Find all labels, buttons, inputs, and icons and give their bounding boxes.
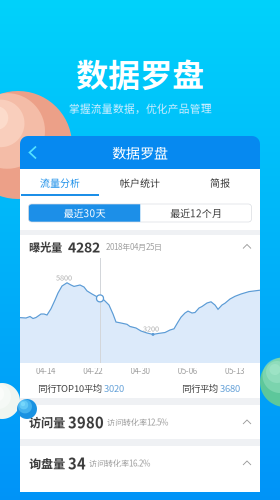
staticText: 最近30天 (63, 206, 105, 220)
button[interactable]: 询盘量 (20, 446, 260, 480)
staticText: 数据罗盘 (112, 142, 168, 163)
staticText: 访问转化率16.2% (89, 457, 150, 469)
staticText: 简报 (210, 175, 230, 190)
staticText: 5800 (56, 272, 72, 283)
button[interactable]: 访问量 (20, 405, 260, 439)
staticText: 同行TOP10平均 (38, 381, 104, 395)
staticText: 访问转化率12.5% (107, 416, 168, 428)
button[interactable]: 最近30天 (28, 204, 140, 222)
staticText: 询盘量 (29, 454, 65, 472)
button[interactable]: Back (20, 136, 46, 169)
staticText: 帐户统计 (120, 175, 160, 190)
staticText: 最近12个月 (170, 206, 222, 220)
staticText: 4282 (62, 236, 106, 257)
staticText: 3020 (104, 381, 124, 395)
staticText: 数据罗盘 (76, 50, 204, 96)
staticText: 掌握流量数据，优化产品管理 (68, 100, 211, 116)
staticText: 05-06 (178, 365, 197, 376)
staticText: 04-30 (130, 365, 149, 376)
button[interactable]: 最近12个月 (140, 204, 251, 222)
staticText: 3680 (220, 381, 240, 395)
staticText: 3200 (143, 323, 159, 334)
staticText: 同行平均 (182, 381, 220, 395)
staticText: 05-13 (225, 365, 244, 376)
staticText: 2018年04月25日 (106, 241, 162, 252)
staticText: 3980 (65, 411, 107, 433)
staticText: 04-22 (83, 365, 102, 376)
staticText: 流量分析 (40, 175, 80, 190)
staticText: 访问量 (29, 413, 65, 431)
staticText: 04-14 (36, 365, 55, 376)
button[interactable]: 帐户统计 (100, 169, 180, 196)
staticText: 曝光量 (29, 238, 62, 255)
staticText: 34 (65, 452, 89, 474)
button[interactable]: 流量分析 (20, 169, 100, 196)
button[interactable]: 简报 (180, 169, 260, 196)
